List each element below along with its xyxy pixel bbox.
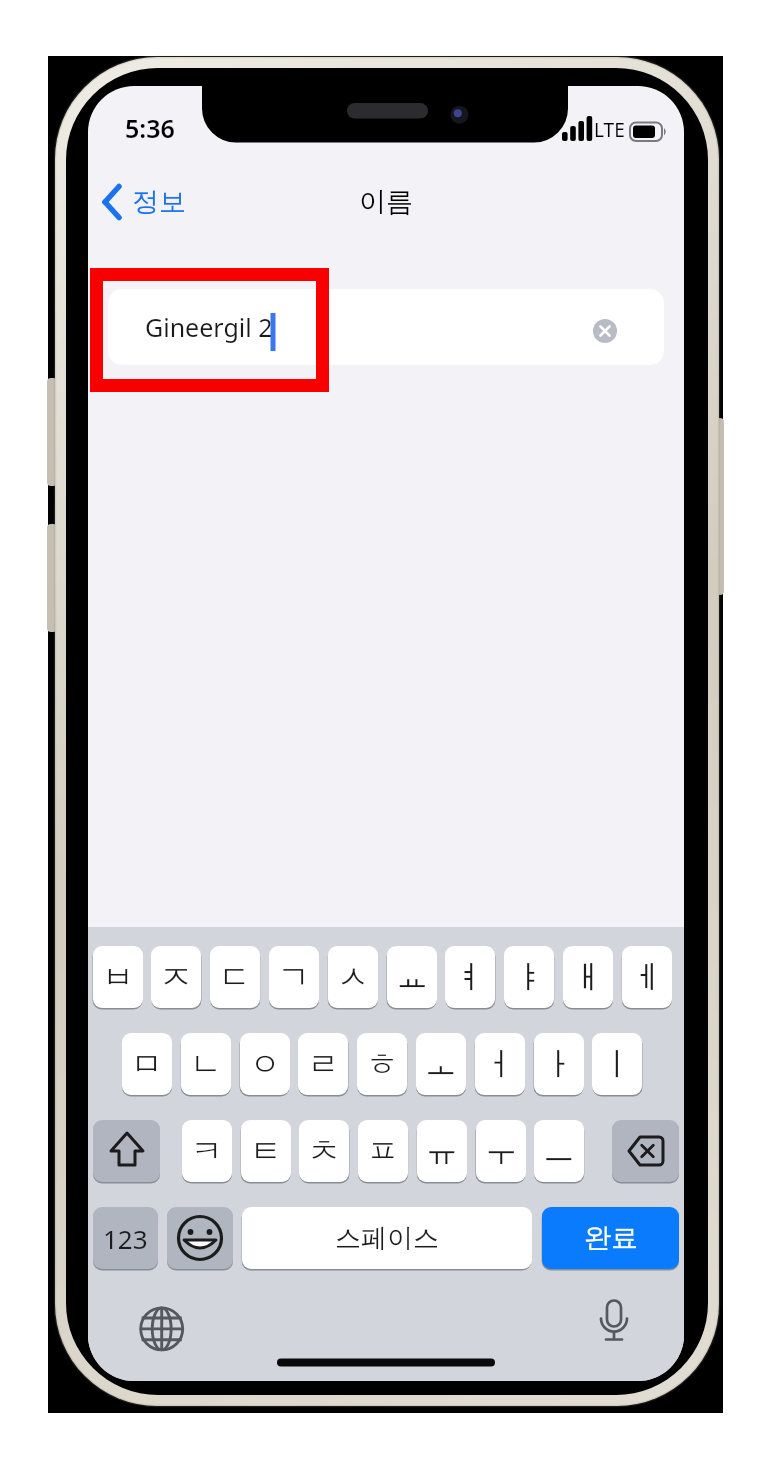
staticText: ㅛ — [396, 957, 428, 997]
staticText: ㅜ — [485, 1131, 517, 1171]
button[interactable]: ㅎ — [357, 1033, 407, 1095]
button[interactable]: ㅂ — [93, 946, 143, 1008]
staticText: ㅊ — [308, 1131, 340, 1171]
button[interactable] — [590, 1298, 638, 1346]
staticText: ㅔ — [631, 957, 663, 997]
staticText: ㄹ — [307, 1044, 339, 1084]
staticText: ㅁ — [131, 1044, 163, 1084]
staticText: ㄷ — [219, 957, 251, 997]
staticText: ㅇ — [249, 1044, 281, 1084]
staticText: ㅎ — [366, 1044, 398, 1084]
button[interactable]: ㅜ — [476, 1120, 526, 1182]
button[interactable]: ㅇ — [240, 1033, 290, 1095]
staticText: ㅅ — [337, 957, 369, 997]
staticText: ㅌ — [250, 1131, 282, 1171]
staticText: ㅠ — [426, 1131, 458, 1171]
button[interactable]: ㅛ — [387, 946, 437, 1008]
button[interactable]: ㅡ — [534, 1120, 584, 1182]
button[interactable]: ㅓ — [475, 1033, 525, 1095]
button[interactable]: ㄷ — [210, 946, 260, 1008]
staticText: ㅏ — [543, 1044, 575, 1084]
staticText: ㅐ — [572, 957, 604, 997]
staticText: 123 — [103, 1221, 148, 1256]
staticText: ㅂ — [102, 957, 134, 997]
button[interactable]: ㅏ — [534, 1033, 584, 1095]
button[interactable]: ㅗ — [416, 1033, 466, 1095]
staticText: 완료 — [584, 1221, 638, 1255]
button[interactable]: ㅐ — [563, 946, 613, 1008]
button[interactable] — [612, 1120, 679, 1182]
staticText: ㅕ — [454, 957, 486, 997]
button[interactable]: ㅑ — [504, 946, 554, 1008]
button[interactable]: ㅠ — [417, 1120, 467, 1182]
button[interactable]: ㄹ — [298, 1033, 348, 1095]
button[interactable] — [93, 1120, 160, 1182]
staticText: ㅋ — [191, 1131, 223, 1171]
staticText: ㅓ — [484, 1044, 516, 1084]
button[interactable]: ㅈ — [151, 946, 201, 1008]
staticText: ㅍ — [367, 1131, 399, 1171]
button[interactable]: ㄱ — [269, 946, 319, 1008]
staticText: ㅑ — [513, 957, 545, 997]
staticText: ㅡ — [543, 1131, 575, 1171]
button[interactable] — [167, 1207, 233, 1269]
staticText: ㅣ — [601, 1044, 633, 1084]
staticText: Gineergil 2 — [145, 310, 273, 344]
staticText: 5:36 — [125, 111, 175, 143]
button[interactable] — [98, 179, 190, 225]
button[interactable]: ㅕ — [445, 946, 495, 1008]
button[interactable]: ㅣ — [592, 1033, 642, 1095]
button[interactable]: ㅍ — [358, 1120, 408, 1182]
staticText: ㅗ — [425, 1044, 457, 1084]
button[interactable]: ㅊ — [299, 1120, 349, 1182]
button[interactable]: ㅔ — [622, 946, 672, 1008]
staticText: LTE — [594, 117, 625, 143]
button[interactable]: 완료 — [542, 1207, 679, 1269]
button[interactable]: ㄴ — [181, 1033, 231, 1095]
button[interactable]: ㅋ — [182, 1120, 232, 1182]
staticText: 정보 — [132, 185, 186, 219]
button[interactable]: ㅌ — [241, 1120, 291, 1182]
staticText: ㄱ — [278, 957, 310, 997]
button[interactable]: Gineergil 2 — [108, 289, 664, 365]
button[interactable]: 123 — [93, 1207, 158, 1269]
button[interactable] — [138, 1305, 186, 1353]
staticText: ㅈ — [160, 957, 192, 997]
staticText: ㄴ — [190, 1044, 222, 1084]
staticText: 스페이스 — [335, 1222, 439, 1255]
button[interactable]: ㅅ — [328, 946, 378, 1008]
staticText: 이름 — [359, 185, 413, 219]
button[interactable] — [591, 317, 619, 345]
button[interactable]: 스페이스 — [242, 1207, 532, 1269]
button[interactable]: ㅁ — [122, 1033, 172, 1095]
